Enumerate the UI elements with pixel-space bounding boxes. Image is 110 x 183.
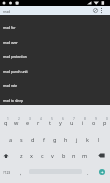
staticText: g bbox=[53, 136, 57, 143]
button[interactable]: v bbox=[47, 147, 58, 164]
staticText: a bbox=[9, 136, 13, 143]
button[interactable]: Clear search bbox=[91, 6, 100, 15]
button[interactable]: h bbox=[60, 131, 71, 148]
button[interactable]: f bbox=[38, 131, 49, 148]
staticText: m bbox=[82, 152, 88, 159]
button[interactable]: read rate bbox=[0, 77, 110, 92]
button[interactable]: z bbox=[16, 147, 27, 164]
button[interactable]: More options bbox=[97, 6, 106, 15]
button[interactable]: w bbox=[11, 114, 22, 131]
staticText: l bbox=[98, 136, 100, 143]
staticText: c bbox=[41, 152, 44, 159]
staticText: s bbox=[20, 136, 23, 143]
button[interactable]: r bbox=[33, 114, 44, 131]
staticText: read punch unit bbox=[3, 69, 28, 73]
button[interactable]: q bbox=[0, 114, 11, 131]
button[interactable]: t bbox=[44, 114, 55, 131]
staticText: b bbox=[62, 152, 66, 159]
staticText: k bbox=[86, 136, 89, 143]
button[interactable]: u bbox=[66, 114, 77, 131]
staticText: x bbox=[30, 152, 33, 159]
staticText: r bbox=[37, 119, 40, 126]
button[interactable]: . bbox=[83, 164, 93, 181]
staticText: p bbox=[103, 119, 107, 126]
staticText: 8 bbox=[84, 117, 86, 121]
staticText: ?123 bbox=[3, 170, 11, 175]
button[interactable]: ?123 bbox=[0, 164, 13, 181]
staticText: z bbox=[20, 152, 23, 159]
staticText: f bbox=[43, 136, 45, 143]
staticText: read bbox=[3, 9, 11, 13]
button[interactable]: read over bbox=[0, 34, 110, 49]
staticText: y bbox=[59, 119, 62, 126]
button[interactable]: , bbox=[16, 164, 26, 181]
button[interactable]: m bbox=[79, 147, 90, 164]
staticText: j bbox=[76, 136, 78, 143]
staticText: read to sleep bbox=[3, 98, 24, 102]
button[interactable]: k bbox=[82, 131, 93, 148]
button[interactable]: y bbox=[55, 114, 66, 131]
button[interactable]: o bbox=[88, 114, 99, 131]
staticText: read rate bbox=[3, 83, 18, 87]
staticText: 5 bbox=[51, 117, 53, 121]
button[interactable]: read for bbox=[0, 19, 110, 34]
staticText: read over bbox=[3, 40, 18, 44]
staticText: e bbox=[26, 119, 30, 126]
staticText: 7 bbox=[73, 117, 75, 121]
button[interactable]: read protection bbox=[0, 48, 110, 63]
staticText: 0 bbox=[106, 117, 108, 121]
button[interactable]: x bbox=[26, 147, 37, 164]
staticText: q bbox=[4, 119, 8, 126]
staticText: i bbox=[82, 119, 84, 126]
button[interactable]: p bbox=[99, 114, 110, 131]
button[interactable]: read to sleep bbox=[0, 92, 110, 107]
staticText: 3 bbox=[29, 117, 31, 121]
button[interactable]: Shift bbox=[0, 147, 11, 164]
button[interactable]: g bbox=[49, 131, 60, 148]
button[interactable]: e bbox=[22, 114, 33, 131]
button[interactable]: a bbox=[5, 131, 16, 148]
staticText: o bbox=[92, 119, 96, 126]
staticText: , bbox=[20, 169, 22, 176]
staticText: h bbox=[64, 136, 68, 143]
button[interactable]: i bbox=[77, 114, 88, 131]
button[interactable]: c bbox=[37, 147, 48, 164]
staticText: read protection bbox=[3, 54, 27, 58]
staticText: v bbox=[51, 152, 54, 159]
staticText: 4 bbox=[40, 117, 42, 121]
staticText: d bbox=[31, 136, 35, 143]
staticText: w bbox=[14, 119, 19, 126]
button[interactable]: Backspace bbox=[92, 147, 110, 164]
button[interactable]: d bbox=[27, 131, 38, 148]
staticText: read for bbox=[3, 25, 16, 29]
staticText: . bbox=[87, 169, 89, 176]
staticText: 9 bbox=[95, 117, 97, 121]
button[interactable]: Enter bbox=[99, 169, 105, 175]
button[interactable]: j bbox=[71, 131, 82, 148]
staticText: 2 bbox=[18, 117, 20, 121]
staticText: n bbox=[72, 152, 76, 159]
staticText: 1 bbox=[7, 117, 9, 121]
button[interactable]: s bbox=[16, 131, 27, 148]
button[interactable]: b bbox=[58, 147, 69, 164]
button[interactable]: n bbox=[68, 147, 79, 164]
button[interactable]: l bbox=[93, 131, 104, 148]
button[interactable]: read punch unit bbox=[0, 63, 110, 78]
staticText: u bbox=[70, 119, 74, 126]
staticText: t bbox=[49, 119, 51, 126]
staticText: 6 bbox=[62, 117, 64, 121]
